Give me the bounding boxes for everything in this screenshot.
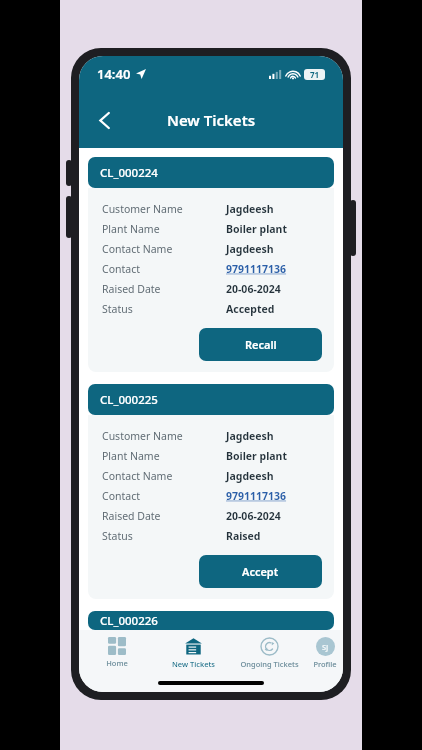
- staticText: Recall: [245, 337, 277, 352]
- staticText: Customer Name: [102, 429, 226, 443]
- staticText: Jagdeesh: [226, 242, 274, 256]
- staticText: New Tickets: [167, 110, 256, 130]
- staticText: Contact: [102, 489, 226, 503]
- staticText: Plant Name: [102, 222, 226, 236]
- staticText: Raised Date: [102, 282, 226, 296]
- staticText: Contact Name: [102, 242, 226, 256]
- staticText: Jagdeesh: [226, 429, 274, 443]
- staticText: Plant Name: [102, 449, 226, 463]
- button[interactable]: Ongoing Tickets: [231, 634, 307, 669]
- staticText: 71: [310, 69, 320, 80]
- staticText: Contact Name: [102, 469, 226, 483]
- staticText: Boiler plant: [226, 449, 287, 463]
- staticText: 9791117136: [226, 489, 287, 503]
- button[interactable]: Home: [79, 634, 155, 668]
- staticText: Jagdeesh: [226, 202, 274, 216]
- staticText: Boiler plant: [226, 222, 287, 236]
- staticText: Raised Date: [102, 509, 226, 523]
- button[interactable]: CL_000225: [88, 384, 334, 415]
- staticText: Profile: [313, 659, 337, 669]
- button[interactable]: SJ: [307, 634, 343, 669]
- button[interactable]: Recall: [199, 328, 322, 361]
- staticText: Accepted: [226, 302, 275, 316]
- button[interactable]: CL_000226: [88, 611, 334, 630]
- staticText: Home: [106, 658, 128, 668]
- staticText: Status: [102, 529, 226, 543]
- staticText: Raised: [226, 529, 261, 543]
- staticText: Customer Name: [102, 202, 226, 216]
- staticText: Contact: [102, 262, 226, 276]
- staticText: Ongoing Tickets: [240, 659, 299, 669]
- staticText: New Tickets: [172, 659, 215, 669]
- button[interactable]: CL_000224: [88, 157, 334, 188]
- staticText: Status: [102, 302, 226, 316]
- staticText: CL_000225: [100, 392, 158, 408]
- staticText: 14:40: [97, 65, 131, 83]
- staticText: 20-06-2024: [226, 509, 281, 523]
- button[interactable]: Back: [85, 100, 125, 140]
- staticText: CL_000226: [100, 613, 158, 629]
- button[interactable]: Accept: [199, 555, 322, 588]
- staticText: 9791117136: [226, 262, 287, 276]
- staticText: CL_000224: [100, 165, 158, 181]
- staticText: 20-06-2024: [226, 282, 281, 296]
- staticText: SJ: [322, 642, 329, 652]
- button[interactable]: New Tickets: [155, 634, 231, 669]
- staticText: Jagdeesh: [226, 469, 274, 483]
- staticText: Accept: [242, 564, 279, 579]
